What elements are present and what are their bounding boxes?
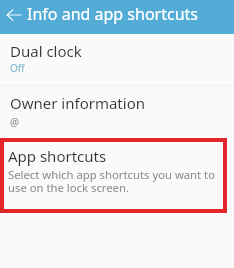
staticText: Select which app shortcuts you want to u… [8,167,221,196]
staticText: Info and app shortcuts [27,3,198,25]
staticText: Owner information [10,93,145,113]
button[interactable]: App shortcuts [0,138,227,213]
button[interactable]: Dual clock [0,39,234,78]
staticText: Off [10,61,25,75]
staticText: Dual clock [10,41,82,61]
button[interactable]: Owner information [0,91,234,132]
button[interactable]: Back [0,1,28,29]
staticText: App shortcuts [8,146,107,166]
staticText: @ [10,115,19,129]
